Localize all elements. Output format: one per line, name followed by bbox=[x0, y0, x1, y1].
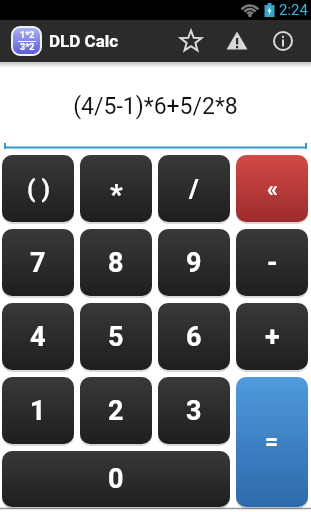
staticText: / bbox=[189, 174, 199, 204]
button[interactable]: 5 bbox=[80, 303, 152, 370]
staticText: = bbox=[265, 429, 279, 456]
staticText: 2 bbox=[108, 395, 124, 427]
staticText: 9 bbox=[186, 247, 202, 279]
button[interactable]: ( ) bbox=[2, 155, 74, 222]
button[interactable]: + bbox=[236, 303, 308, 370]
staticText: 4 bbox=[30, 321, 46, 353]
button[interactable]: 0 bbox=[2, 451, 230, 507]
staticText: ( ) bbox=[27, 175, 50, 203]
button[interactable]: - bbox=[236, 229, 308, 296]
staticText: « bbox=[267, 176, 278, 202]
staticText: 1 bbox=[30, 395, 46, 427]
staticText: * bbox=[110, 178, 123, 211]
staticText: 2:24 bbox=[279, 1, 308, 19]
button[interactable]: 7 bbox=[2, 229, 74, 296]
button[interactable] bbox=[260, 20, 306, 62]
staticText: 7 bbox=[30, 247, 46, 279]
button[interactable]: / bbox=[158, 155, 230, 222]
button[interactable]: 9 bbox=[158, 229, 230, 296]
staticText: - bbox=[267, 247, 278, 279]
button[interactable]: « bbox=[236, 155, 308, 222]
staticText: 0 bbox=[108, 463, 124, 495]
button[interactable]: = bbox=[236, 377, 308, 507]
button[interactable]: 6 bbox=[158, 303, 230, 370]
button[interactable]: 3 bbox=[158, 377, 230, 444]
staticText: 5 bbox=[108, 321, 124, 353]
button[interactable] bbox=[168, 20, 214, 62]
staticText: 6 bbox=[186, 321, 202, 353]
button[interactable]: 1 bbox=[2, 377, 74, 444]
staticText: 3*2 bbox=[20, 42, 35, 53]
staticText: + bbox=[265, 321, 280, 353]
button[interactable]: 4 bbox=[2, 303, 74, 370]
button[interactable] bbox=[214, 20, 260, 62]
button[interactable]: 2 bbox=[80, 377, 152, 444]
staticText: 8 bbox=[108, 247, 124, 279]
button[interactable]: 8 bbox=[80, 229, 152, 296]
staticText: DLD Calc bbox=[49, 31, 119, 51]
staticText: (4/5-1)*6+5/2*8 bbox=[73, 93, 238, 120]
staticText: 3 bbox=[186, 395, 202, 427]
button[interactable]: * bbox=[80, 155, 152, 222]
staticText: 1*2 bbox=[20, 30, 35, 41]
